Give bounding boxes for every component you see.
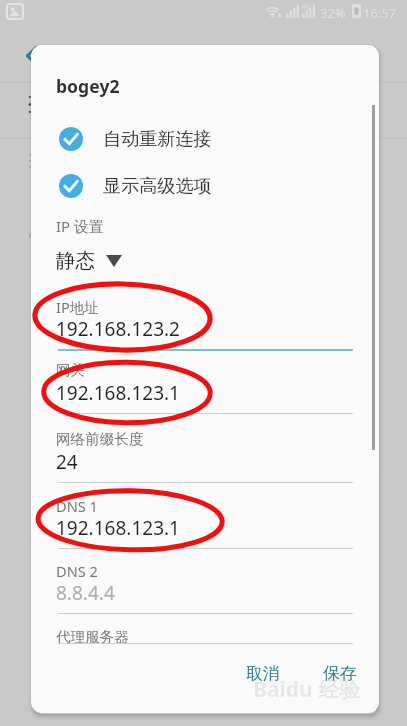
staticText: Baidu 经验: [253, 675, 361, 704]
button[interactable]: DNS 2: [31, 561, 379, 623]
button[interactable]: IP地址: [31, 297, 379, 359]
staticText: 192.168.123.1: [56, 380, 180, 406]
button[interactable]: 网关: [31, 361, 379, 423]
staticText: 32%: [320, 4, 346, 22]
button[interactable]: 保存: [311, 653, 369, 694]
button[interactable]: Back: [16, 38, 48, 70]
button[interactable]: 显示高级选项: [31, 163, 379, 209]
staticText: 保存: [323, 663, 357, 684]
button[interactable]: 自动重新连接: [31, 116, 379, 162]
staticText: 4G: [302, 2, 312, 12]
staticText: IP 设置: [56, 216, 104, 236]
staticText: 网络前缀长度: [56, 430, 144, 448]
staticText: IP地址: [56, 297, 99, 317]
button[interactable]: 代理服务器: [31, 628, 379, 690]
staticText: bogey2: [56, 74, 120, 98]
button[interactable]: 网络前缀长度: [31, 430, 379, 492]
staticText: DNS 1: [56, 496, 98, 516]
staticText: 代理服务器: [56, 628, 129, 646]
staticText: 显示高级选项: [103, 175, 212, 198]
button[interactable]: 取消: [234, 653, 292, 694]
staticText: DNS 2: [56, 561, 98, 581]
button[interactable]: 静态: [56, 248, 122, 273]
staticText: 网关: [56, 361, 86, 379]
staticText: 24: [56, 449, 78, 475]
staticText: 8.8.4.4: [56, 580, 115, 606]
staticText: 192.168.123.2: [56, 316, 180, 342]
button[interactable]: DNS 1: [31, 496, 379, 558]
staticText: 静态: [56, 248, 95, 273]
staticText: 自动重新连接: [103, 128, 212, 151]
staticText: 16:57: [363, 4, 397, 22]
staticText: 192.168.123.1: [56, 515, 180, 541]
staticText: 取消: [246, 663, 280, 684]
